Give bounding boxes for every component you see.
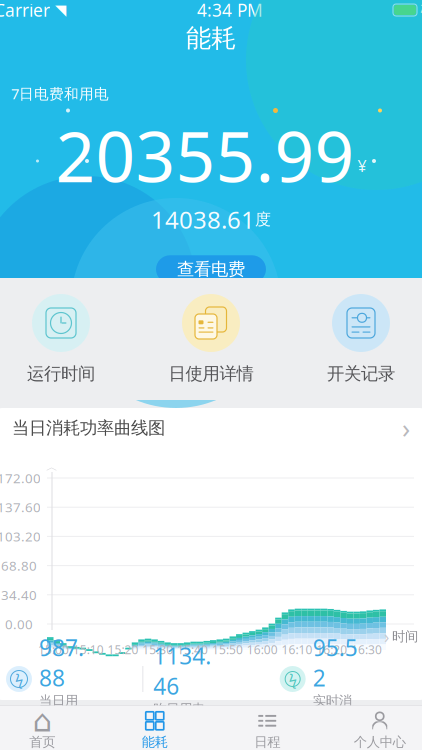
staticText: 172.00	[0, 469, 41, 487]
button[interactable]: 日程	[211, 706, 323, 750]
staticText: 1134.46	[153, 641, 211, 701]
staticText: 20355.99	[55, 109, 354, 201]
staticText: ϟ	[420, 0, 422, 20]
button[interactable]: 查看电费	[156, 255, 266, 283]
staticText: 运行时间	[27, 363, 95, 384]
staticText: 昨日用电	[153, 701, 205, 717]
staticText: 95.52	[313, 632, 358, 693]
staticText: 能耗	[142, 734, 168, 750]
staticText: 个人中心	[354, 734, 406, 750]
staticText: 当日用电	[39, 693, 78, 725]
staticText: ¥	[357, 155, 366, 176]
staticText: ︿	[46, 460, 58, 474]
staticText: 14038.61	[151, 203, 255, 235]
button[interactable]: 开关记录	[286, 278, 422, 400]
button[interactable]: 能耗	[98, 706, 211, 750]
staticText: 15:20	[107, 641, 138, 657]
staticText: 0.00	[5, 615, 33, 633]
button[interactable]: 个人中心	[323, 706, 422, 750]
staticText: ϟ	[15, 669, 23, 689]
button[interactable]: ⌂	[0, 706, 98, 750]
staticText: 日使用详情	[168, 363, 253, 384]
staticText: 103.20	[0, 527, 41, 545]
staticText: 查看电费	[177, 259, 245, 280]
staticText: 实时消耗	[313, 693, 352, 725]
staticText: 4:34 PM	[197, 0, 263, 21]
staticText: Carrier	[0, 0, 50, 21]
staticText: 16:00	[247, 641, 278, 657]
staticText: 16:30	[351, 641, 382, 657]
staticText: ◥	[55, 2, 66, 18]
staticText: 15:10	[73, 641, 104, 657]
staticText: 度	[255, 209, 271, 229]
staticText: 987.88	[39, 632, 84, 693]
staticText: 7日电费和用电	[11, 84, 109, 103]
staticText: 首页	[29, 734, 55, 750]
staticText: 16:10	[281, 641, 312, 657]
staticText: ⌂	[33, 703, 52, 738]
button[interactable]: 日使用详情	[136, 278, 286, 400]
button[interactable]: 运行时间	[0, 278, 136, 400]
staticText: 15:30	[142, 641, 173, 657]
staticText: 15:00	[38, 641, 69, 657]
staticText: 15:50	[212, 641, 243, 657]
staticText: 34.40	[1, 586, 37, 604]
staticText: ›	[402, 410, 410, 446]
staticText: 15:40	[177, 641, 208, 657]
staticText: 当日消耗功率曲线图	[12, 417, 165, 439]
staticText: ϟ	[289, 669, 297, 689]
staticText: 137.60	[0, 498, 41, 516]
staticText: 68.80	[1, 557, 37, 574]
staticText: 能耗	[186, 23, 236, 54]
staticText: 16:20	[316, 641, 347, 657]
staticText: 日程	[254, 734, 280, 750]
staticText: 时间	[392, 628, 418, 645]
staticText: ›	[384, 625, 389, 648]
button[interactable]: 当日消耗功率曲线图	[0, 408, 422, 448]
staticText: 开关记录	[327, 363, 395, 384]
